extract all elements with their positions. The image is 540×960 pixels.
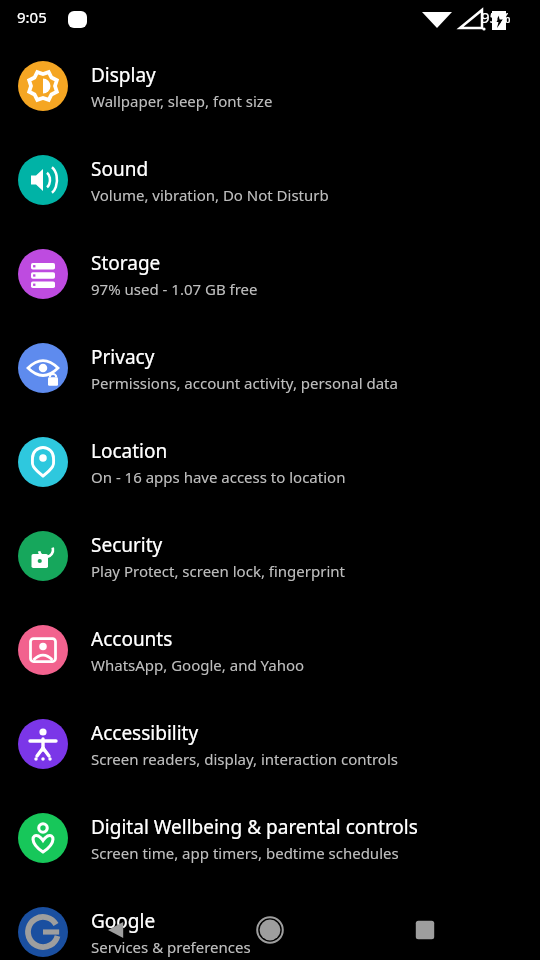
staticText: 9:05 (17, 7, 47, 27)
staticText: WhatsApp, Google, and Yahoo (91, 655, 305, 675)
button[interactable]: Storage (0, 241, 540, 335)
button[interactable]: Home (250, 910, 290, 950)
staticText: Wallpaper, sleep, font size (91, 91, 273, 111)
button[interactable]: Sound (0, 147, 540, 241)
staticText: Location (91, 438, 168, 464)
staticText: Screen readers, display, interaction con… (91, 749, 398, 769)
staticText: Accessibility (91, 720, 199, 746)
button[interactable]: Recent apps (405, 910, 445, 950)
staticText: Volume, vibration, Do Not Disturb (91, 185, 329, 205)
staticText: Services & preferences (91, 937, 251, 957)
button[interactable]: Google (0, 899, 540, 960)
staticText: Digital Wellbeing & parental controls (91, 814, 418, 840)
staticText: Google (91, 908, 156, 934)
staticText: Sound (91, 156, 149, 182)
button[interactable]: Security (0, 523, 540, 617)
staticText: Privacy (91, 344, 155, 370)
button[interactable]: Privacy (0, 335, 540, 429)
button[interactable]: Back (96, 910, 136, 950)
button[interactable]: Digital Wellbeing & parental controls (0, 805, 540, 899)
staticText: Play Protect, screen lock, fingerprint (91, 561, 345, 581)
staticText: Permissions, account activity, personal … (91, 373, 398, 393)
button[interactable]: Accessibility (0, 711, 540, 805)
button[interactable]: Location (0, 429, 540, 523)
staticText: Screen time, app timers, bedtime schedul… (91, 843, 399, 863)
staticText: On - 16 apps have access to location (91, 467, 346, 487)
button[interactable]: Accounts (0, 617, 540, 711)
staticText: Accounts (91, 626, 173, 652)
button[interactable]: Display (0, 53, 540, 147)
staticText: 95% (481, 7, 511, 27)
staticText: Storage (91, 250, 161, 276)
staticText: Security (91, 532, 163, 558)
staticText: 97% used - 1.07 GB free (91, 279, 258, 299)
staticText: Display (91, 62, 156, 88)
